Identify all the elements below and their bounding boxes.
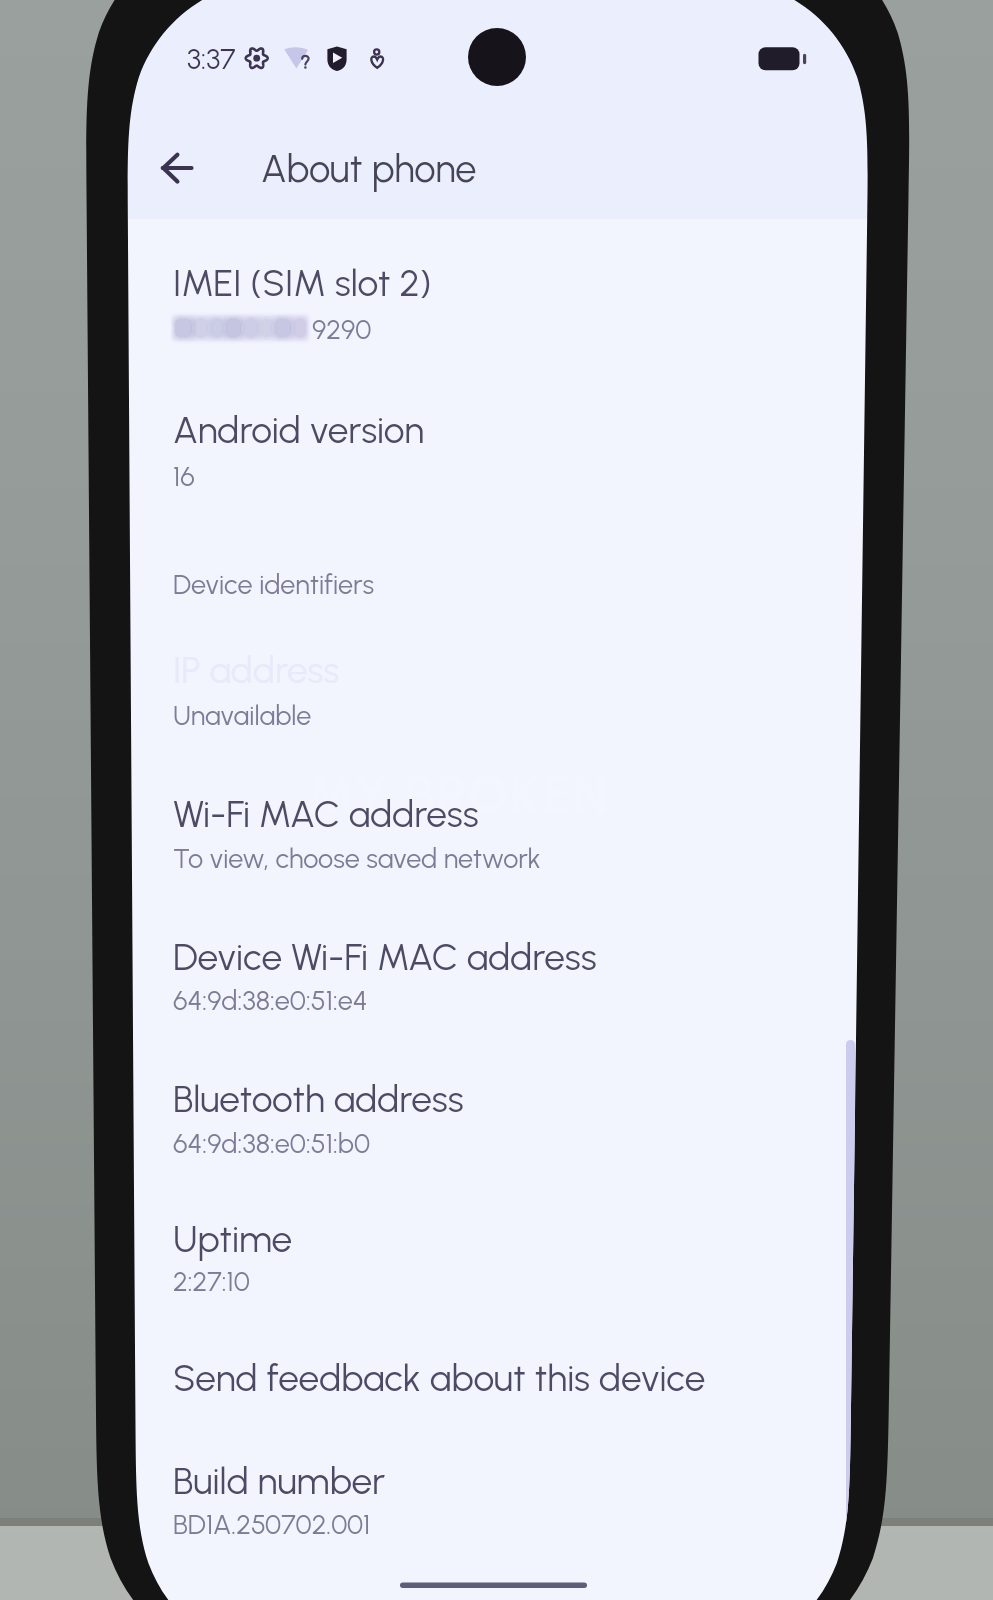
staticText: BD1A.250702.001 [173, 1508, 371, 1540]
staticText: Send feedback about this device [173, 1356, 706, 1400]
staticText: Uptime [173, 1217, 293, 1261]
staticText: Android version [173, 408, 425, 452]
staticText: IMEI (SIM slot 2) [173, 261, 432, 305]
staticText: To view, choose saved network [173, 842, 541, 874]
staticText: Device Wi-Fi MAC address [173, 935, 597, 979]
staticText: 2:27:10 [173, 1265, 250, 1297]
staticText: Unavailable [173, 699, 312, 731]
staticText: Wi-Fi MAC address [173, 792, 479, 836]
button[interactable] [130, 918, 863, 1036]
staticText: IP address [173, 648, 340, 692]
button[interactable] [130, 391, 863, 512]
staticText: Bluetooth address [173, 1077, 464, 1121]
staticText: 16 [173, 460, 195, 492]
button[interactable] [130, 1442, 863, 1560]
button[interactable] [130, 631, 863, 751]
button[interactable] [130, 1060, 863, 1179]
button[interactable] [130, 244, 863, 366]
staticText: Device identifiers [173, 568, 374, 600]
staticText: 9290 [312, 313, 372, 345]
staticText: 64:9d:38:e0:51:b0 [173, 1127, 371, 1159]
staticText: About phone [261, 146, 477, 192]
button[interactable] [130, 1200, 863, 1317]
staticText: 64:9d:38:e0:51:e4 [173, 984, 368, 1016]
staticText: MY BROKEN [306, 764, 610, 826]
staticText: Build number [173, 1459, 386, 1503]
staticText: 3:37 [187, 42, 236, 76]
button[interactable] [130, 775, 863, 894]
button[interactable] [130, 1339, 863, 1417]
button[interactable]: Navigate up [130, 122, 224, 216]
